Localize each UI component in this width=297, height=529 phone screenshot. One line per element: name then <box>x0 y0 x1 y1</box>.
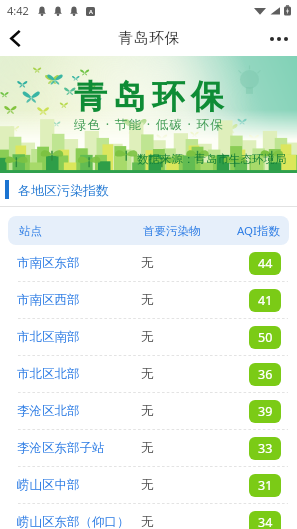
staticText: 36 <box>258 366 273 383</box>
staticText: AQI指数 <box>237 223 280 239</box>
staticText: 无 <box>141 366 154 382</box>
staticText: 市南区东部 <box>17 255 80 271</box>
staticText: 青岛环保 <box>71 76 227 118</box>
staticText: 李沧区北部 <box>17 403 80 419</box>
staticText: 崂山区中部 <box>17 477 80 493</box>
staticText: A <box>89 8 93 16</box>
staticText: 41 <box>258 292 273 309</box>
staticText: 4:42 <box>7 3 29 18</box>
staticText: 李沧区东部子站 <box>17 440 105 456</box>
button[interactable]: More options <box>261 21 297 56</box>
staticText: 市南区西部 <box>17 292 80 308</box>
staticText: 绿色 · 节能 · 低碳 · 环保 <box>74 116 224 133</box>
button[interactable]: 李沧区北部 <box>8 393 289 429</box>
staticText: 首要污染物 <box>143 224 237 238</box>
staticText: 44 <box>258 255 273 272</box>
button[interactable]: 市南区西部 <box>8 282 289 318</box>
button[interactable]: 李沧区东部子站 <box>8 430 289 466</box>
button[interactable]: 市北区北部 <box>8 356 289 392</box>
staticText: 无 <box>141 292 154 308</box>
staticText: 50 <box>258 329 273 346</box>
staticText: 站点 <box>19 224 143 238</box>
staticText: 无 <box>141 403 154 419</box>
button[interactable]: Back <box>0 21 30 56</box>
staticText: 34 <box>258 514 273 529</box>
staticText: 无 <box>141 514 154 529</box>
staticText: 市北区南部 <box>17 329 80 345</box>
staticText: 无 <box>141 329 154 345</box>
staticText: 31 <box>258 477 273 494</box>
button[interactable]: 崂山区中部 <box>8 467 289 503</box>
staticText: 无 <box>141 440 154 456</box>
staticText: 无 <box>141 255 154 271</box>
button[interactable]: 市南区东部 <box>8 245 289 281</box>
button[interactable]: 崂山区东部（仰口） <box>8 504 289 529</box>
staticText: 无 <box>141 477 154 493</box>
staticText: 崂山区东部（仰口） <box>17 514 130 529</box>
staticText: 33 <box>258 440 273 457</box>
staticText: 各地区污染指数 <box>18 182 109 198</box>
staticText: 39 <box>258 403 273 420</box>
staticText: 青岛环保 <box>118 29 180 48</box>
staticText: 市北区北部 <box>17 366 80 382</box>
button[interactable]: 市北区南部 <box>8 319 289 355</box>
staticText: 数据来源：青岛市生态环境局 <box>137 152 287 166</box>
